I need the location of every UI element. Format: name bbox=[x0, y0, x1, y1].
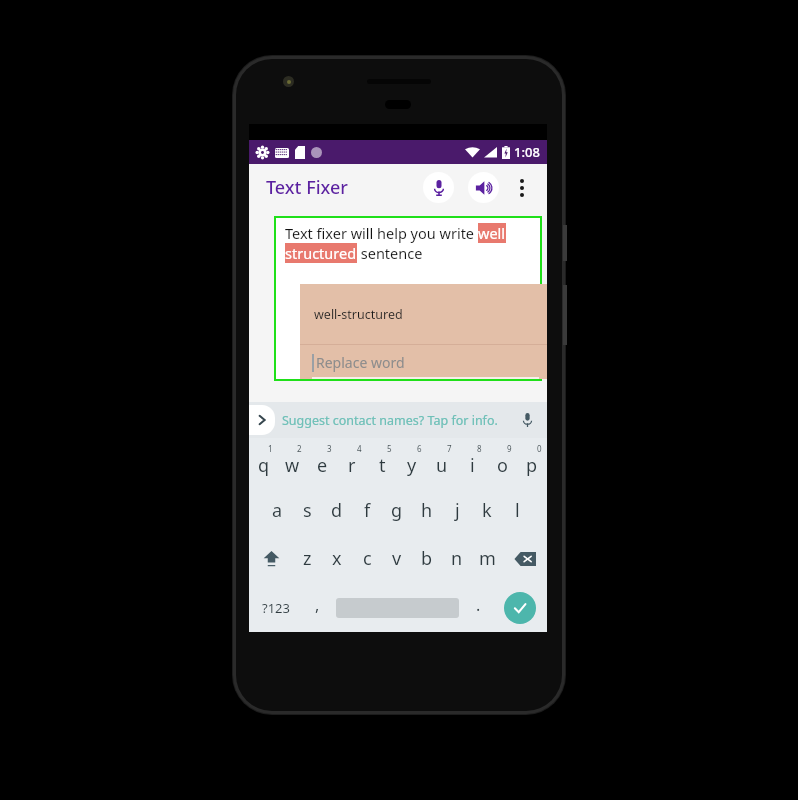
button[interactable]: v bbox=[382, 534, 412, 583]
staticText: n bbox=[451, 546, 463, 571]
button[interactable]: l bbox=[502, 486, 532, 534]
button[interactable]: g bbox=[382, 486, 412, 534]
staticText: 8 bbox=[477, 443, 482, 454]
staticText: l bbox=[515, 498, 520, 523]
button[interactable]: . bbox=[463, 583, 493, 632]
staticText: 6 bbox=[417, 443, 422, 454]
staticText: x bbox=[332, 546, 342, 571]
button[interactable]: n bbox=[442, 534, 472, 583]
staticText: 1 bbox=[268, 443, 273, 454]
staticText: w bbox=[285, 453, 300, 478]
staticText: p bbox=[526, 453, 538, 478]
staticText: sentence bbox=[357, 243, 423, 263]
staticText: a bbox=[272, 498, 283, 523]
staticText: well-structured bbox=[314, 306, 403, 323]
button[interactable]: 8 bbox=[457, 438, 487, 486]
button[interactable]: Voice typing bbox=[517, 410, 537, 430]
staticText: . bbox=[476, 594, 481, 616]
button[interactable]: z bbox=[293, 534, 322, 583]
staticText: t bbox=[379, 453, 386, 478]
staticText: s bbox=[303, 498, 312, 523]
button[interactable]: c bbox=[352, 534, 382, 583]
staticText: k bbox=[482, 498, 492, 523]
button[interactable]: Expand suggestions bbox=[249, 405, 275, 435]
staticText: Replace word bbox=[316, 353, 405, 372]
staticText: i bbox=[470, 453, 475, 478]
staticText: d bbox=[331, 498, 343, 523]
staticText: q bbox=[258, 453, 270, 478]
staticText: 9 bbox=[507, 443, 512, 454]
button[interactable]: 0 bbox=[517, 438, 547, 486]
staticText: h bbox=[421, 498, 433, 523]
button[interactable] bbox=[332, 583, 463, 632]
button[interactable]: k bbox=[472, 486, 502, 534]
staticText: m bbox=[479, 546, 496, 571]
staticText: well bbox=[478, 223, 506, 243]
button[interactable]: 4 bbox=[337, 438, 367, 486]
staticText: 0 bbox=[537, 443, 542, 454]
button[interactable]: Speak text bbox=[468, 172, 499, 203]
button[interactable]: f bbox=[352, 486, 382, 534]
button[interactable]: 1 bbox=[249, 438, 278, 486]
staticText: v bbox=[392, 546, 402, 571]
button[interactable]: Backspace bbox=[502, 534, 547, 583]
staticText: y bbox=[407, 453, 417, 478]
button[interactable]: Shift bbox=[249, 534, 293, 583]
button[interactable]: d bbox=[322, 486, 352, 534]
button[interactable]: Enter bbox=[504, 592, 536, 624]
button[interactable]: well-structured bbox=[300, 284, 547, 344]
button[interactable]: Voice input bbox=[423, 172, 454, 203]
button[interactable]: , bbox=[302, 583, 332, 632]
button[interactable]: m bbox=[472, 534, 502, 583]
staticText: c bbox=[363, 546, 372, 571]
staticText: 7 bbox=[447, 443, 452, 454]
button[interactable]: a bbox=[263, 486, 292, 534]
staticText: Text Fixer bbox=[266, 175, 348, 200]
button[interactable]: 7 bbox=[427, 438, 457, 486]
button[interactable]: 3 bbox=[307, 438, 337, 486]
button[interactable]: s bbox=[292, 486, 322, 534]
staticText: structured bbox=[285, 243, 357, 263]
button[interactable]: 9 bbox=[487, 438, 517, 486]
staticText: Text fixer will help you write bbox=[285, 223, 478, 243]
staticText: g bbox=[391, 498, 403, 523]
button[interactable]: 2 bbox=[278, 438, 307, 486]
staticText: f bbox=[364, 498, 371, 523]
staticText: u bbox=[436, 453, 448, 478]
button[interactable]: 6 bbox=[397, 438, 427, 486]
staticText: o bbox=[497, 453, 508, 478]
button[interactable]: h bbox=[412, 486, 442, 534]
button[interactable]: j bbox=[442, 486, 472, 534]
staticText: j bbox=[455, 498, 460, 523]
staticText: ?123 bbox=[262, 599, 290, 617]
staticText: z bbox=[303, 546, 312, 571]
staticText: 5 bbox=[387, 443, 392, 454]
button[interactable]: b bbox=[412, 534, 442, 583]
button[interactable]: More options bbox=[507, 173, 537, 203]
staticText: 2 bbox=[297, 443, 302, 454]
staticText: b bbox=[421, 546, 433, 571]
button[interactable]: ?123 bbox=[249, 583, 302, 632]
staticText: 4 bbox=[357, 443, 362, 454]
button[interactable]: 5 bbox=[367, 438, 397, 486]
staticText: 3 bbox=[327, 443, 332, 454]
staticText: , bbox=[315, 594, 320, 616]
button[interactable]: x bbox=[322, 534, 352, 583]
button[interactable]: Suggest contact names? Tap for info. bbox=[282, 412, 498, 429]
staticText: e bbox=[317, 453, 328, 478]
staticText: r bbox=[348, 453, 356, 478]
staticText: 1:08 bbox=[514, 143, 540, 161]
